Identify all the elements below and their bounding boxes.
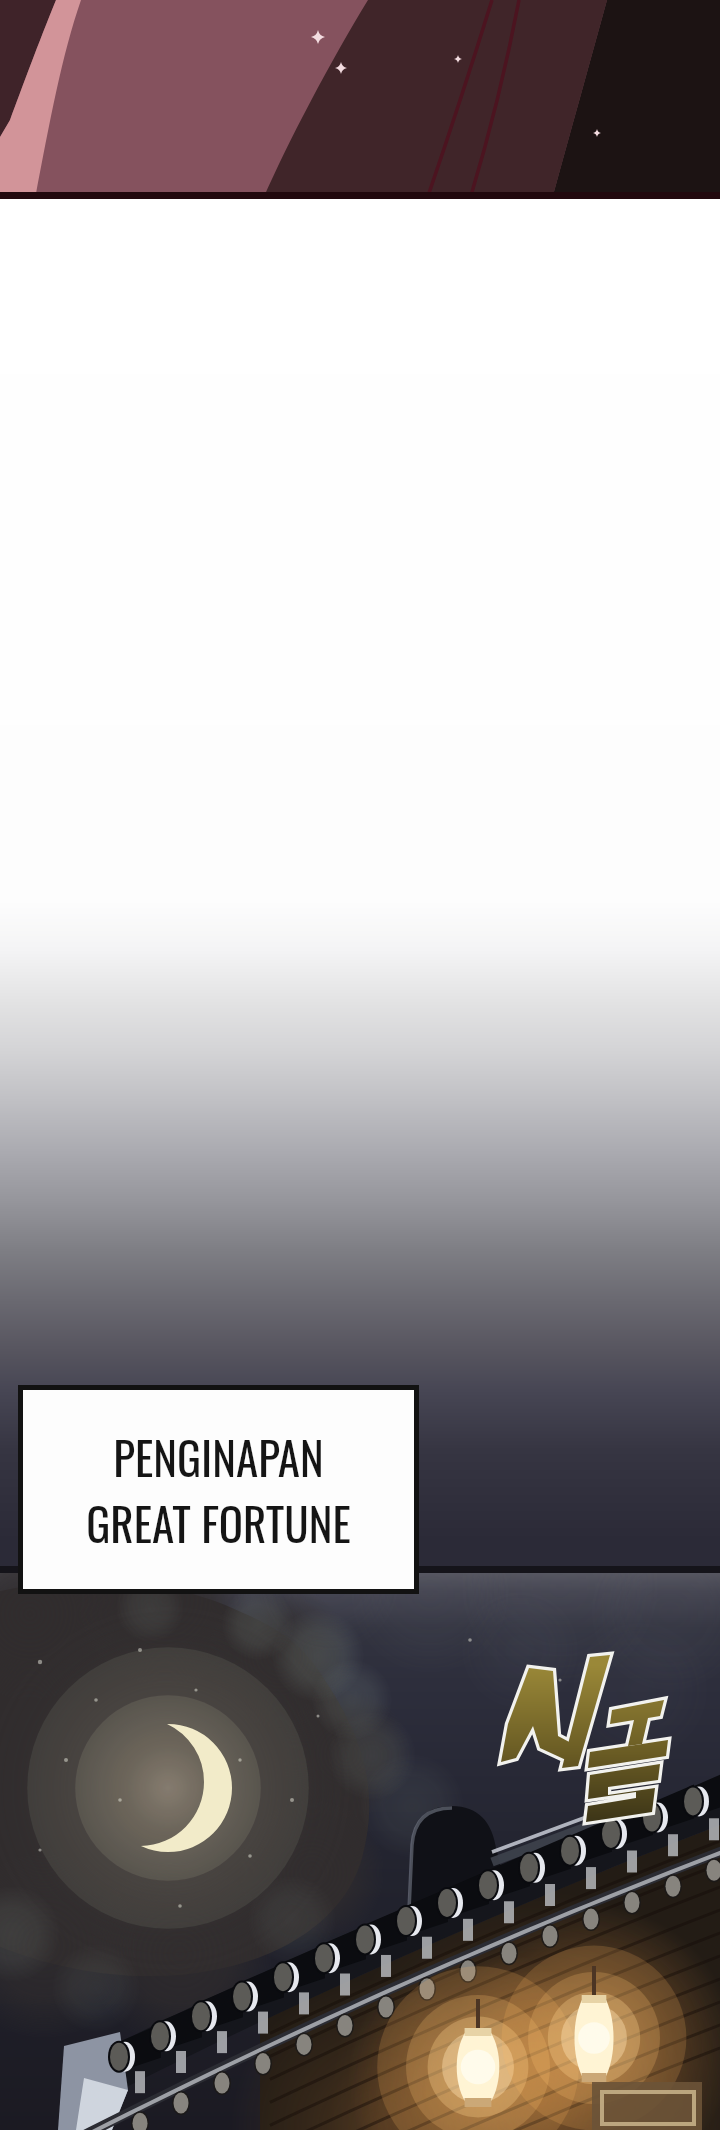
button[interactable]: PENGINAPAN GREAT FORTUNE (23, 1390, 414, 1589)
staticText: PENGINAPAN GREAT FORTUNE (86, 1423, 351, 1556)
